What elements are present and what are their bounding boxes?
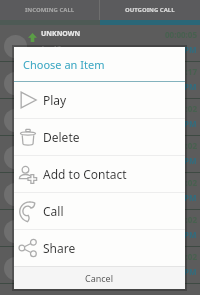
staticText: Delete: [43, 129, 80, 145]
staticText: 00:00:17: [165, 66, 197, 77]
staticText: Call: [43, 203, 64, 219]
staticText: UNKNOWN: [41, 177, 81, 187]
staticText: Aug 15: [41, 229, 61, 237]
staticText: Choose an Item: [23, 57, 105, 72]
staticText: 1:02 PM: [166, 118, 197, 129]
staticText: UNKNOWN: [41, 103, 81, 113]
button[interactable]: Play: [14, 82, 185, 118]
staticText: UNKNOWN: [41, 214, 81, 224]
button[interactable]: Delete: [14, 119, 185, 155]
button[interactable]: UNKNOWN: [0, 247, 200, 284]
staticText: Aug 16: [41, 118, 61, 126]
staticText: 7:45 PM: [166, 229, 197, 240]
staticText: Aug 17: [41, 44, 61, 52]
button[interactable]: UNKNOWN: [0, 136, 200, 173]
staticText: OUTGOING CALL: [125, 6, 175, 14]
staticText: 8:12 PM: [166, 192, 197, 203]
staticText: Aug 17: [41, 81, 61, 89]
staticText: Aug 16: [41, 155, 61, 163]
staticText: 3:29 PM: [166, 44, 197, 55]
staticText: 00:00:05: [165, 29, 197, 40]
button[interactable]: UNKNOWN: [0, 99, 200, 136]
button[interactable]: Add to Contact: [14, 156, 185, 192]
staticText: 00:01:02: [165, 103, 197, 114]
button[interactable]: UNKNOWN: [0, 173, 200, 210]
staticText: Aug 15: [41, 192, 61, 200]
staticText: UNKNOWN: [41, 251, 81, 261]
staticText: 00:00:02: [165, 140, 197, 151]
button[interactable]: UNKNOWN: [0, 62, 200, 99]
staticText: 2:02 PM: [166, 81, 197, 92]
button[interactable]: OUTGOING CALL: [100, 0, 200, 20]
staticText: 9:35 PM: [166, 155, 197, 166]
button[interactable]: Call: [14, 193, 185, 229]
staticText: UNKNOWN: [41, 29, 81, 39]
staticText: Add to Contact: [43, 166, 127, 182]
staticText: 00:00:02: [165, 251, 197, 262]
button[interactable]: Cancel: [14, 267, 185, 289]
staticText: 00:00:02: [165, 177, 197, 188]
staticText: 00:00:02: [165, 214, 197, 225]
button[interactable]: INCOMING CALL: [0, 0, 99, 20]
staticText: Play: [43, 92, 67, 108]
staticText: Share: [43, 240, 76, 256]
button[interactable]: UNKNOWN: [0, 210, 200, 247]
staticText: Aug 14: [41, 266, 61, 274]
staticText: Cancel: [85, 272, 114, 284]
staticText: 6:30 PM: [166, 266, 197, 277]
staticText: UNKNOWN: [41, 140, 81, 150]
staticText: INCOMING CALL: [25, 6, 75, 14]
button[interactable]: UNKNOWN: [0, 25, 200, 62]
button[interactable]: Share: [14, 230, 185, 266]
staticText: UNKNOWN: [41, 66, 81, 76]
